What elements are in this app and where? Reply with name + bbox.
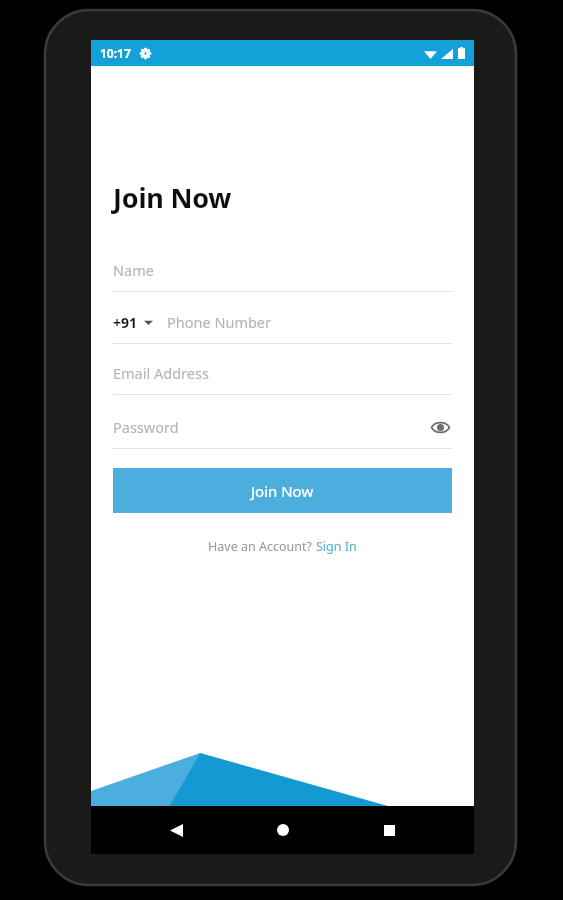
- staticText: Phone Number: [167, 312, 272, 332]
- staticText: Name: [113, 260, 154, 280]
- staticText: Have an Account?: [208, 538, 316, 555]
- staticText: +91: [113, 313, 138, 332]
- staticText: Sign In: [316, 538, 357, 555]
- button[interactable]: Home: [261, 808, 305, 852]
- button[interactable]: Recent apps: [367, 808, 411, 852]
- staticText: 10:17: [100, 45, 131, 61]
- button[interactable]: Show password: [428, 415, 452, 439]
- button[interactable]: Join Now: [113, 468, 452, 513]
- button[interactable]: Back: [154, 808, 198, 852]
- staticText: Join Now: [113, 179, 232, 216]
- button[interactable]: +91: [113, 312, 452, 344]
- staticText: Password: [113, 417, 428, 437]
- button[interactable]: Have an Account?: [91, 538, 474, 555]
- button[interactable]: Name: [113, 260, 452, 292]
- button[interactable]: Email Address: [113, 363, 452, 395]
- staticText: Join Now: [251, 481, 314, 501]
- staticText: Email Address: [113, 363, 209, 383]
